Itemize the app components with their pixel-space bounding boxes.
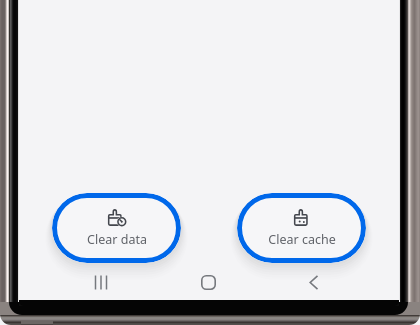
button[interactable]: Clear data [52, 193, 181, 263]
button[interactable]: Clear cache [237, 193, 366, 263]
button[interactable]: Back [280, 263, 350, 301]
staticText: Clear cache [268, 231, 336, 248]
staticText: Clear data [87, 231, 147, 248]
button[interactable]: Home [173, 263, 243, 301]
button[interactable]: Recents [66, 263, 136, 301]
